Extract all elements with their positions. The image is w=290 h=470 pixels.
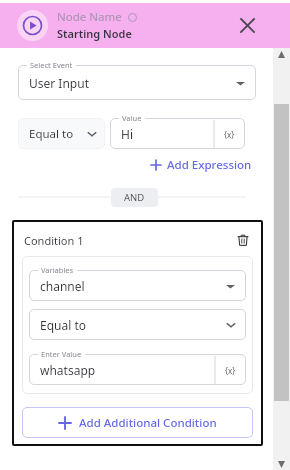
staticText: channel [40,278,85,294]
button[interactable]: Insert expression [215,355,246,385]
staticText: Value [122,113,142,123]
button[interactable]: Add Additional Condition [22,407,253,438]
button[interactable]: Close [234,12,260,38]
button[interactable] [110,118,245,149]
staticText: AND [124,191,145,204]
button[interactable]: Equal to [29,309,246,340]
button[interactable]: Scroll up [273,48,290,60]
button[interactable] [18,65,256,100]
staticText: Starting Node [57,26,132,41]
button[interactable]: Delete condition [233,230,253,250]
staticText: whatsapp [40,362,96,378]
staticText: Condition 1 [24,233,84,248]
staticText: Variables [41,265,74,275]
button[interactable]: Add Expression [147,154,256,176]
staticText: Hi [121,126,133,142]
staticText: Equal to [29,126,74,142]
staticText: Enter Value [41,349,82,359]
staticText: Add Expression [167,157,252,173]
staticText: {x} [224,129,235,140]
button[interactable]: Insert expression [214,119,245,149]
staticText: Select Event [30,60,73,70]
button[interactable]: AND [111,188,158,207]
button[interactable]: Equal to [18,118,105,149]
staticText: Add Additional Condition [79,415,217,431]
button[interactable]: Help [127,12,137,22]
staticText: User Input [29,75,89,91]
button[interactable] [29,354,246,385]
button[interactable]: Scroll down [273,458,290,470]
staticText: Node Name [57,9,122,25]
staticText: Equal to [40,317,87,333]
staticText: {x} [225,365,236,376]
button[interactable] [29,270,246,301]
